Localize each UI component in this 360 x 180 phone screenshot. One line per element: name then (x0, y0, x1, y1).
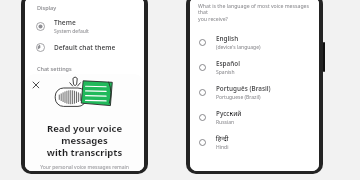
button[interactable]: Português (Brasil) (190, 80, 319, 105)
staticText: Portuguese (Brazil) (216, 94, 261, 101)
button[interactable]: Español (190, 55, 319, 80)
staticText: Theme (54, 18, 76, 27)
staticText: Português (Brasil) (216, 84, 271, 93)
button[interactable]: हिन्दी (190, 130, 319, 155)
staticText: Show newly downloaded media in your devi… (54, 88, 113, 108)
staticText: Русский (216, 109, 242, 118)
button[interactable]: Close (30, 79, 41, 90)
staticText: English (216, 34, 239, 43)
staticText: Media visibility (54, 78, 102, 87)
staticText: What is the language of most voice messa… (198, 2, 313, 23)
button[interactable]: Media visibility (25, 75, 144, 111)
staticText: Español (216, 59, 240, 68)
staticText: Chat settings (37, 65, 72, 72)
button[interactable]: English (190, 30, 319, 55)
staticText: System default (54, 28, 89, 35)
button[interactable]: Русский (190, 105, 319, 130)
button[interactable]: Theme (25, 14, 144, 39)
staticText: Hindi (216, 144, 229, 151)
staticText: Display (37, 4, 57, 11)
staticText: Default chat theme (54, 43, 116, 52)
staticText: (device's language) (216, 44, 261, 51)
button[interactable]: Default chat theme (25, 39, 144, 56)
staticText: Your personal voice messages remain end-… (33, 164, 136, 171)
staticText: Spanish (216, 69, 235, 76)
staticText: Read your voice messages with transcript… (31, 122, 138, 159)
staticText: हिन्दी (216, 134, 229, 143)
staticText: Russian (216, 119, 235, 126)
